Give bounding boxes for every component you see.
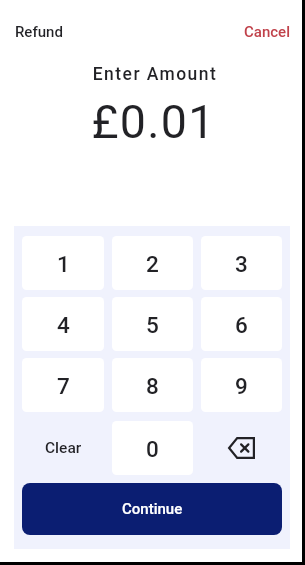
staticText: Clear xyxy=(45,439,82,457)
staticText: Enter Amount xyxy=(5,64,305,85)
staticText: Cancel xyxy=(244,23,291,41)
button[interactable]: 9 xyxy=(201,358,282,412)
staticText: 6 xyxy=(235,312,248,338)
button[interactable]: Continue xyxy=(22,483,282,535)
staticText: Continue xyxy=(122,500,183,518)
button[interactable]: 0 xyxy=(112,421,193,475)
button[interactable]: 5 xyxy=(112,297,193,351)
button[interactable]: 4 xyxy=(22,297,104,351)
button[interactable]: 3 xyxy=(201,236,282,290)
staticText: £0.01 xyxy=(2,95,305,149)
staticText: 1 xyxy=(57,251,70,277)
staticText: 9 xyxy=(235,373,248,399)
button[interactable]: 1 xyxy=(22,236,104,290)
button[interactable]: 6 xyxy=(201,297,282,351)
button[interactable]: Cancel xyxy=(244,23,291,41)
staticText: 8 xyxy=(146,373,159,399)
button[interactable]: 7 xyxy=(22,358,104,412)
staticText: 0 xyxy=(146,436,159,462)
button[interactable]: 8 xyxy=(112,358,193,412)
button[interactable]: Backspace xyxy=(201,421,282,475)
button[interactable]: Refund xyxy=(15,23,63,41)
staticText: 7 xyxy=(57,373,70,399)
staticText: Refund xyxy=(15,23,63,41)
staticText: 5 xyxy=(146,312,159,338)
staticText: 3 xyxy=(235,251,248,277)
staticText: 4 xyxy=(57,312,70,338)
staticText: 2 xyxy=(146,251,159,277)
button[interactable]: Clear xyxy=(22,421,104,475)
button[interactable]: 2 xyxy=(112,236,193,290)
